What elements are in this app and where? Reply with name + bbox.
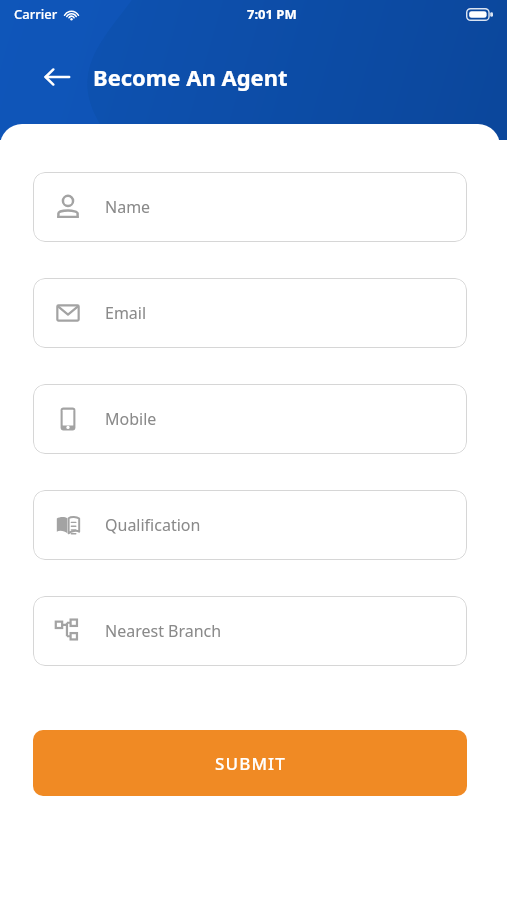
- staticText: Become An Agent: [93, 62, 288, 92]
- staticText: SUBMIT: [215, 752, 286, 775]
- button[interactable]: Nearest Branch: [33, 596, 467, 666]
- button[interactable]: Email: [33, 278, 467, 348]
- button[interactable]: Back: [34, 54, 80, 100]
- staticText: Email: [105, 302, 147, 324]
- button[interactable]: Mobile: [33, 384, 467, 454]
- staticText: Nearest Branch: [105, 620, 222, 642]
- staticText: Qualification: [105, 514, 201, 536]
- staticText: Name: [105, 196, 151, 218]
- staticText: Carrier: [14, 5, 58, 23]
- staticText: 7:01 PM: [247, 5, 297, 23]
- button[interactable]: SUBMIT: [33, 730, 467, 796]
- button[interactable]: Name: [33, 172, 467, 242]
- button[interactable]: Qualification: [33, 490, 467, 560]
- staticText: Mobile: [105, 408, 157, 430]
